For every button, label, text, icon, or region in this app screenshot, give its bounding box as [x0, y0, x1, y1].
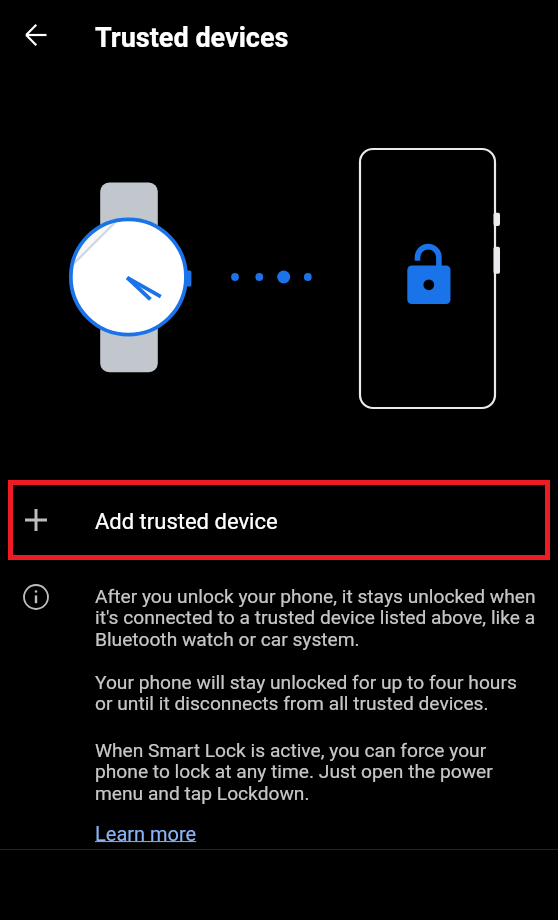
staticText: Trusted devices — [95, 22, 289, 54]
staticText: Your phone will stay unlocked for up to … — [95, 671, 536, 715]
staticText: Add trusted device — [95, 509, 278, 535]
button[interactable]: Add trusted device — [0, 480, 558, 560]
button[interactable]: Back — [8, 7, 64, 63]
button[interactable]: Learn more — [95, 822, 197, 845]
staticText: Learn more — [95, 822, 197, 845]
staticText: When Smart Lock is active, you can force… — [95, 739, 536, 805]
staticText: After you unlock your phone, it stays un… — [95, 585, 536, 651]
